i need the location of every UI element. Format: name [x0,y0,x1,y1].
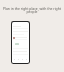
staticText: Plan in the right place, with the right … [2,6,62,14]
